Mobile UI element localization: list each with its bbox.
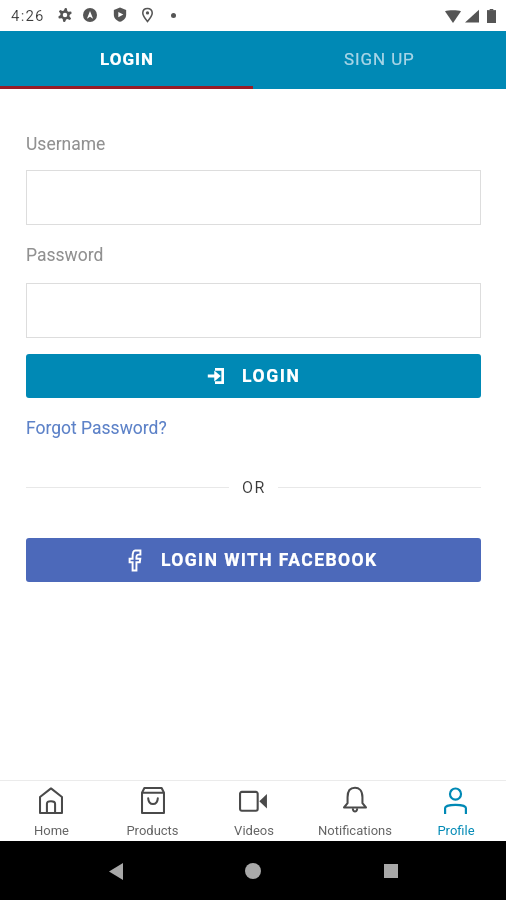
button[interactable]: Profile (405, 781, 506, 841)
button[interactable]: SIGN UP (253, 31, 506, 86)
staticText: Home (34, 823, 69, 838)
button[interactable]: LOGIN WITH FACEBOOK (26, 538, 481, 582)
staticText: Products (126, 823, 179, 838)
button[interactable]: Notifications (304, 781, 405, 841)
button[interactable]: Products (102, 781, 203, 841)
staticText: Password (26, 245, 104, 266)
staticText: 4:26 (11, 7, 45, 25)
button[interactable] (26, 170, 481, 225)
button[interactable]: LOGIN (26, 354, 481, 398)
button[interactable]: Videos (203, 781, 304, 841)
staticText: Forgot Password? (26, 418, 167, 439)
button[interactable]: LOGIN (0, 31, 253, 86)
staticText: LOGIN (242, 366, 301, 387)
staticText: Videos (234, 823, 274, 838)
button[interactable]: Back (94, 849, 138, 893)
staticText: Username (26, 134, 106, 155)
staticText: LOGIN WITH FACEBOOK (161, 550, 378, 571)
staticText: LOGIN (100, 49, 154, 69)
staticText: OR (242, 478, 266, 497)
button[interactable] (26, 283, 481, 338)
button[interactable]: Forgot Password? (26, 418, 167, 439)
staticText: Profile (437, 823, 475, 838)
button[interactable]: Recent apps (369, 849, 413, 893)
staticText: Notifications (318, 823, 392, 838)
staticText: SIGN UP (344, 49, 415, 69)
button[interactable]: Home (0, 781, 102, 841)
button[interactable]: Home (231, 849, 275, 893)
